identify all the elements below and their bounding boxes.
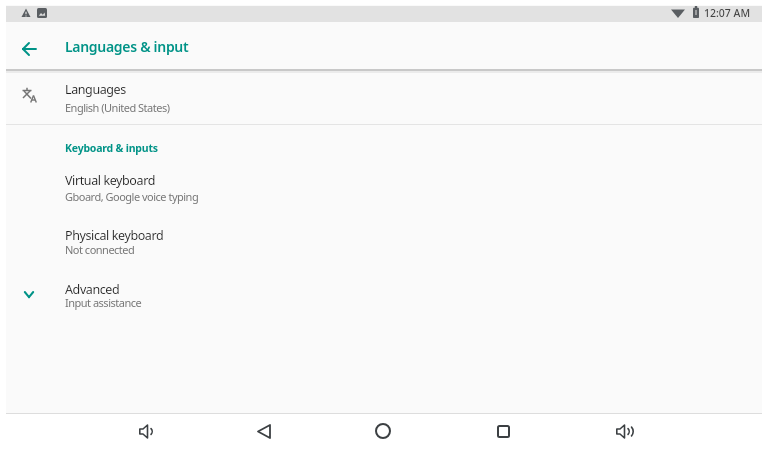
button[interactable]: [359, 407, 407, 455]
staticText: Keyboard & inputs: [65, 141, 158, 155]
button[interactable]: Advanced: [6, 266, 762, 320]
button[interactable]: [12, 36, 46, 62]
staticText: 12:07 AM: [704, 6, 751, 20]
button[interactable]: [240, 407, 288, 455]
button[interactable]: [600, 407, 648, 455]
button[interactable]: Virtual keyboard: [6, 158, 762, 212]
staticText: Advanced: [65, 281, 120, 298]
staticText: Not connected: [65, 242, 135, 257]
staticText: Languages: [65, 81, 126, 98]
staticText: English (United States): [65, 100, 170, 115]
staticText: Input assistance: [65, 295, 142, 310]
staticText: Gboard, Google voice typing: [65, 189, 199, 204]
staticText: Languages & input: [65, 37, 189, 56]
button[interactable]: Physical keyboard: [6, 212, 762, 266]
button[interactable]: Languages: [6, 72, 762, 124]
button[interactable]: [121, 407, 169, 455]
button[interactable]: [479, 407, 527, 455]
staticText: Physical keyboard: [65, 227, 164, 244]
staticText: Virtual keyboard: [65, 172, 155, 189]
